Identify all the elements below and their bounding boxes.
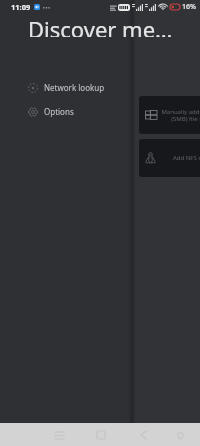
staticText: Network lookup xyxy=(44,82,105,93)
button[interactable]: Add NFS server xyxy=(139,139,200,177)
staticText: Manually add Windows (SMB) file server xyxy=(161,108,200,123)
staticText: 16% xyxy=(182,2,196,12)
staticText: Add NFS server xyxy=(173,154,200,162)
staticText: Options xyxy=(44,106,74,117)
button[interactable]: Manually add Windows (SMB) file server xyxy=(139,96,200,134)
button[interactable]: Options xyxy=(0,104,200,119)
button[interactable]: Network lookup xyxy=(0,80,200,95)
staticText: 11:09 xyxy=(11,2,31,12)
staticText: Discover me… xyxy=(28,14,173,37)
